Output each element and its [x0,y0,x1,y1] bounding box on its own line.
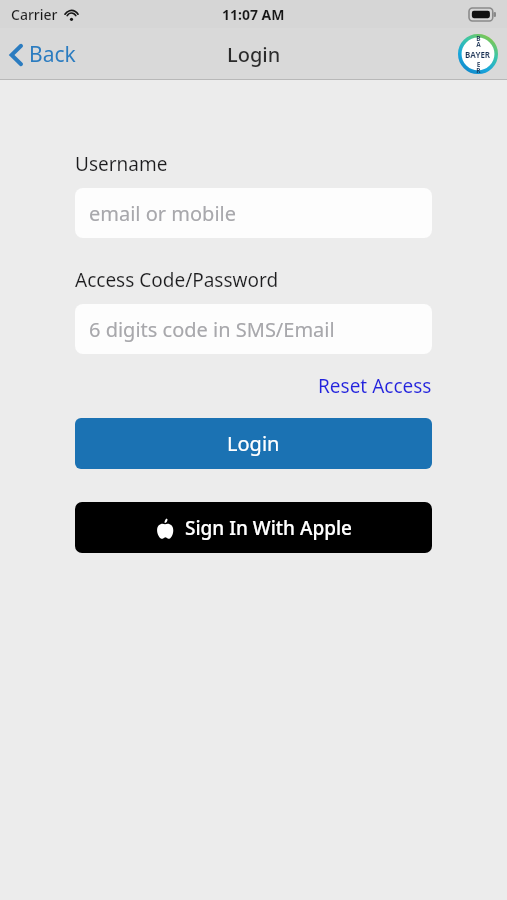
staticText: E R [476,60,481,75]
staticText: Login [227,430,280,457]
staticText: Access Code/Password [75,267,279,293]
staticText: Carrier [11,5,58,24]
button[interactable]: email or mobile [75,188,432,238]
button[interactable]: 6 digits code in SMS/Email [75,304,432,354]
staticText: Username [75,151,168,177]
staticText: 11:07 AM [222,5,285,24]
button[interactable]: Sign In With Apple [75,502,432,553]
staticText: Login [227,41,281,68]
button[interactable]: Bayer [456,32,500,76]
staticText: B A [476,34,481,49]
staticText: BAYER [465,49,491,60]
staticText: Back [29,40,76,69]
staticText: Reset Access [318,373,432,399]
staticText: Sign In With Apple [185,515,352,541]
button[interactable]: Back [0,34,88,75]
button[interactable]: Login [75,418,432,469]
staticText: 6 digits code in SMS/Email [89,316,335,343]
staticText: email or mobile [89,200,236,227]
button[interactable]: Reset Access [318,371,432,401]
